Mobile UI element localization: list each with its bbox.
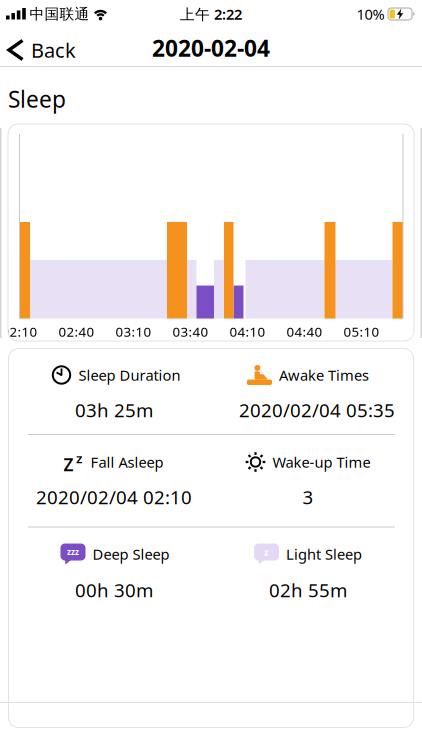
staticText: Back: [31, 37, 76, 63]
staticText: 03:40: [172, 323, 208, 340]
staticText: 04:40: [286, 323, 322, 340]
staticText: 00h 30m: [75, 578, 153, 602]
staticText: 03h 25m: [75, 398, 153, 422]
staticText: 03:10: [115, 323, 151, 340]
staticText: z: [76, 449, 82, 467]
staticText: 中国联通: [29, 5, 89, 23]
staticText: 04:10: [229, 323, 265, 340]
staticText: 上午 2:22: [180, 4, 242, 24]
staticText: 02h 55m: [269, 578, 347, 602]
staticText: Sleep: [8, 84, 66, 114]
staticText: Wake-up Time: [272, 452, 370, 472]
staticText: z: [264, 546, 269, 558]
staticText: 2020-02-04: [152, 33, 270, 63]
staticText: 02:10: [1, 323, 37, 340]
staticText: 2020/02/04 02:10: [36, 485, 192, 509]
staticText: 3: [302, 485, 313, 509]
staticText: Awake Times: [279, 365, 369, 385]
staticText: 2020/02/04 05:35: [239, 398, 395, 422]
staticText: 10%: [356, 4, 384, 24]
staticText: Sleep Duration: [78, 365, 180, 385]
button[interactable]: Back: [7, 37, 76, 63]
staticText: Deep Sleep: [92, 544, 169, 564]
staticText: Fall Asleep: [90, 452, 163, 472]
staticText: 05:10: [343, 323, 379, 340]
staticText: Light Sleep: [286, 544, 362, 564]
staticText: Z: [63, 453, 73, 476]
staticText: 02:40: [58, 323, 94, 340]
staticText: zzz: [67, 547, 79, 557]
